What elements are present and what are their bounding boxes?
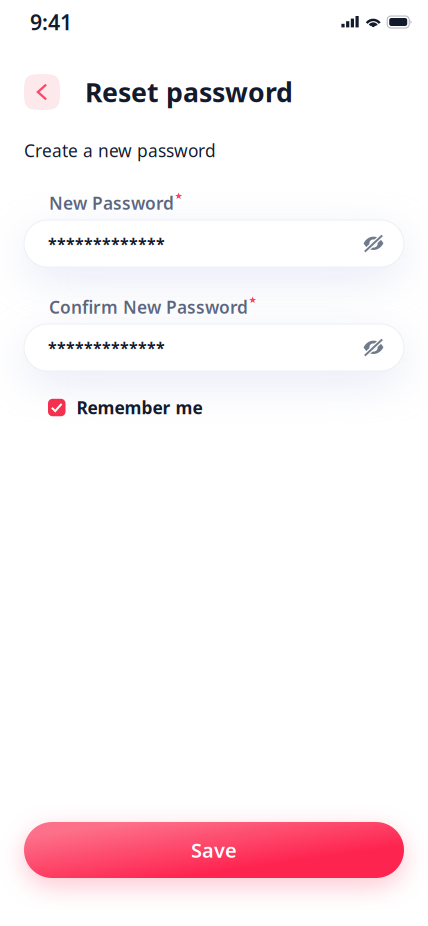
staticText: Create a new password	[24, 139, 216, 162]
button[interactable]: Save	[24, 822, 404, 878]
staticText: *************	[48, 337, 165, 358]
button[interactable]: Remember me	[48, 396, 202, 419]
button[interactable]: Show password	[357, 332, 390, 363]
button[interactable]: Back	[24, 74, 60, 110]
staticText: Confirm New Password	[49, 295, 248, 318]
staticText: Remember me	[76, 396, 202, 419]
staticText: Save	[191, 837, 237, 863]
button[interactable]: Show password	[357, 228, 390, 259]
staticText: *************	[48, 233, 165, 254]
staticText: 9:41	[30, 8, 72, 36]
staticText: Reset password	[85, 74, 293, 110]
staticText: New Password	[49, 191, 174, 214]
